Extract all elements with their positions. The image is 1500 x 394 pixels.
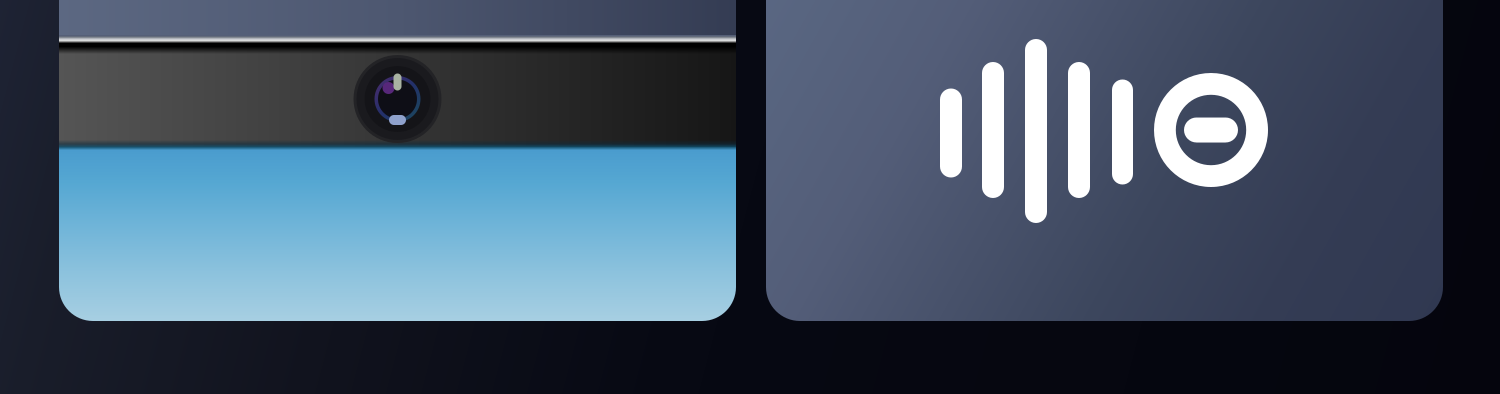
button[interactable]: Self view — [59, 0, 736, 321]
button[interactable]: Mute — [766, 0, 1443, 321]
